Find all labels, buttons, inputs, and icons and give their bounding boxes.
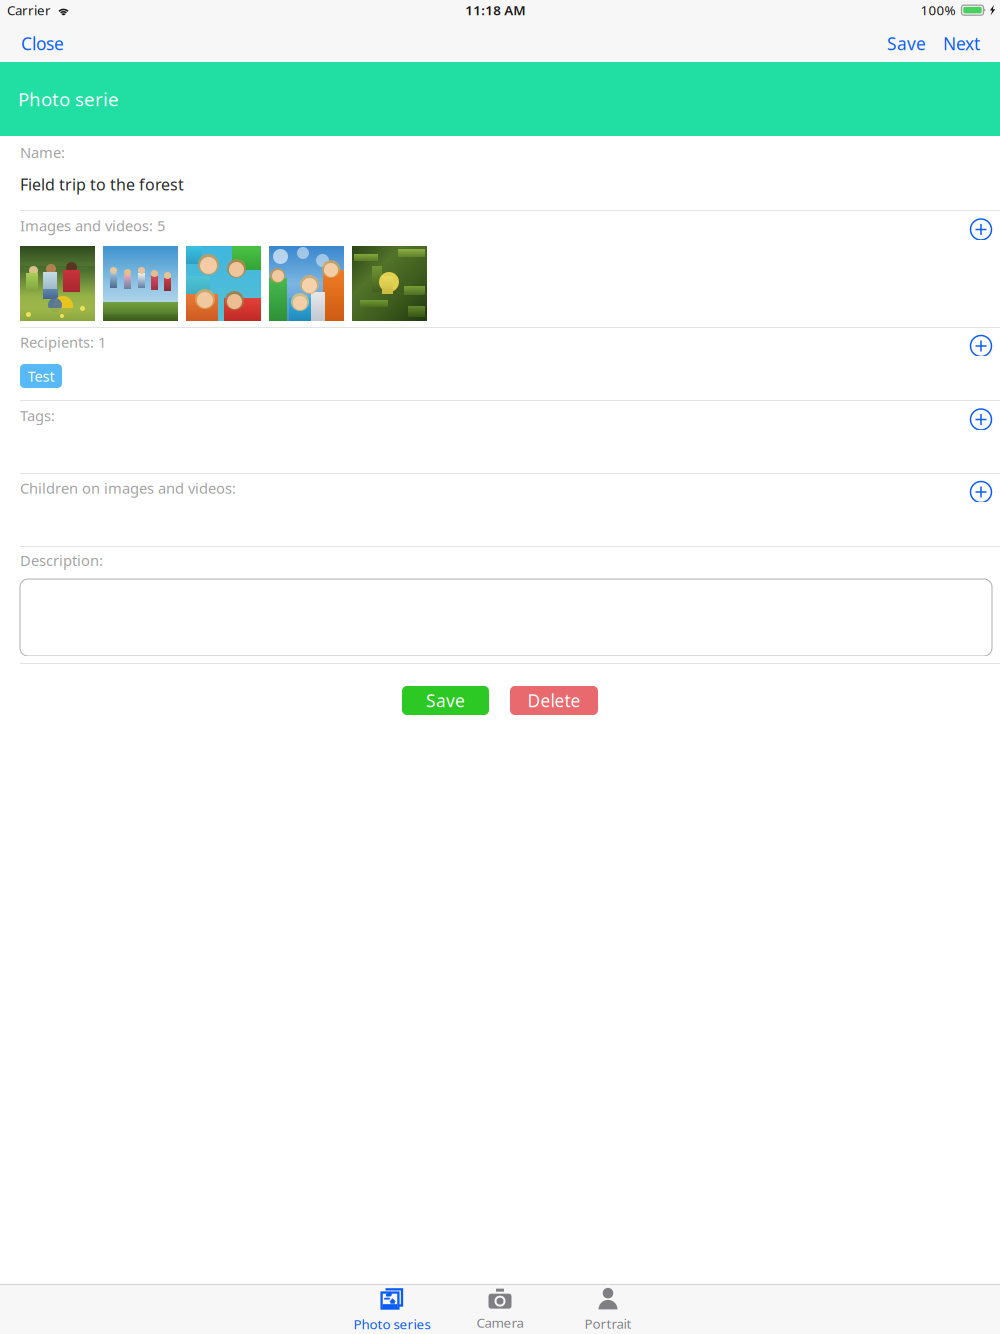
staticText: Images and videos: 5 (20, 216, 165, 235)
staticText: Description: (20, 550, 103, 570)
staticText: Test (27, 366, 54, 386)
staticText: Carrier (7, 1, 51, 19)
staticText: Camera (476, 1314, 523, 1331)
staticText: Children on images and videos: (20, 478, 236, 498)
button[interactable]: Save (883, 25, 930, 62)
button[interactable]: Add (960, 400, 1000, 430)
staticText: Tags: (20, 406, 55, 425)
staticText: Close (21, 32, 64, 55)
button[interactable]: Close (0, 25, 85, 62)
staticText: 100% (920, 1, 955, 19)
button[interactable]: Camera (446, 1285, 554, 1334)
staticText: Save (887, 32, 926, 55)
button[interactable]: Next (939, 25, 984, 62)
staticText: Recipients: 1 (20, 332, 106, 352)
staticText: Delete (527, 689, 580, 712)
button[interactable]: Add (960, 327, 1000, 357)
button[interactable]: Add (960, 210, 1000, 240)
button[interactable]: Test (20, 364, 62, 388)
button[interactable]: Save (402, 686, 489, 715)
staticText: Name: (20, 142, 65, 162)
staticText: Field trip to the forest (20, 174, 184, 195)
staticText: Photo series (353, 1315, 430, 1333)
staticText: Portrait (584, 1315, 631, 1332)
button[interactable]: Portrait (554, 1285, 662, 1334)
staticText: 11:18 AM (465, 1, 525, 19)
button[interactable]: Delete (510, 686, 598, 715)
staticText: Photo serie (18, 87, 119, 111)
button[interactable]: Add (960, 473, 1000, 503)
button[interactable]: Photo series (338, 1285, 446, 1334)
staticText: Save (426, 689, 465, 712)
staticText: Next (943, 32, 980, 55)
